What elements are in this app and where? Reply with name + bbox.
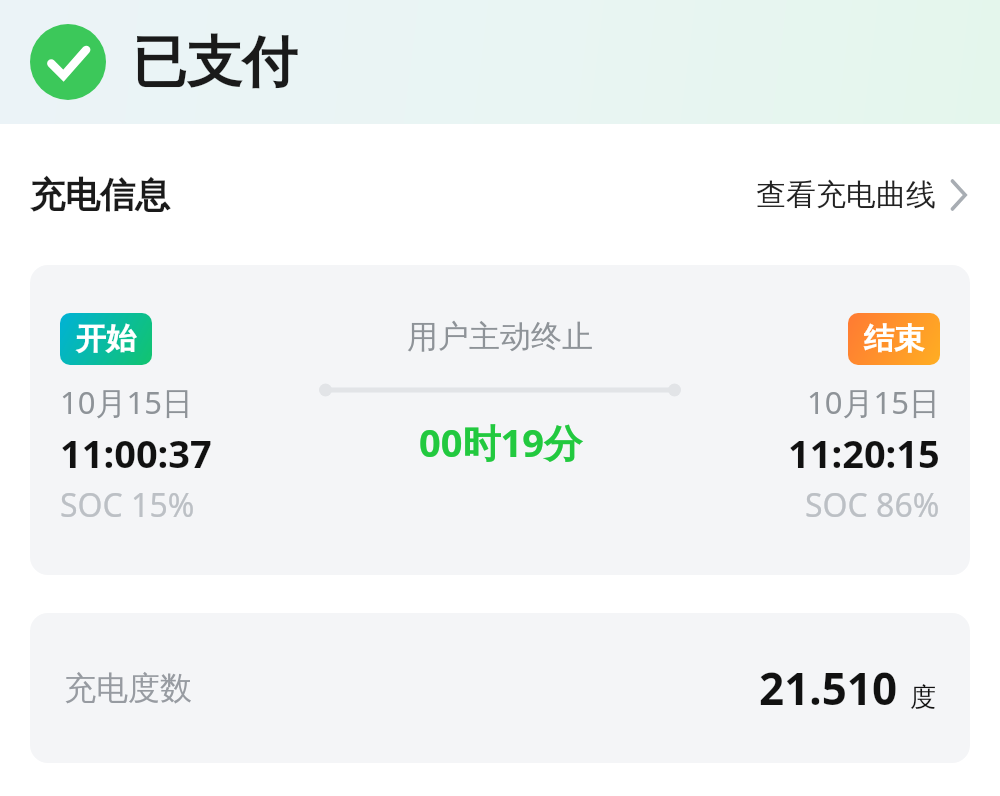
staticText: 21.510	[759, 658, 898, 718]
staticText: 00时19分	[419, 416, 582, 468]
staticText: 度	[910, 681, 936, 714]
staticText: 11:00:37	[60, 427, 212, 479]
staticText: 10月15日	[60, 381, 193, 423]
staticText: 用户主动终止	[407, 317, 593, 356]
staticText: 结束	[864, 320, 924, 358]
staticText: 11:20:15	[788, 427, 940, 479]
staticText: 已支付	[132, 28, 297, 97]
staticText: 充电度数	[64, 668, 192, 708]
button[interactable]: 查看充电曲线	[750, 170, 972, 220]
staticText: SOC 15%	[60, 483, 195, 527]
staticText: 开始	[76, 320, 136, 358]
staticText: 充电信息	[30, 173, 170, 217]
staticText: 10月15日	[807, 381, 940, 423]
staticText: 查看充电曲线	[756, 176, 936, 214]
button[interactable]: 充电度数	[30, 613, 970, 763]
staticText: SOC 86%	[805, 483, 940, 527]
button[interactable]: 开始	[30, 265, 970, 575]
